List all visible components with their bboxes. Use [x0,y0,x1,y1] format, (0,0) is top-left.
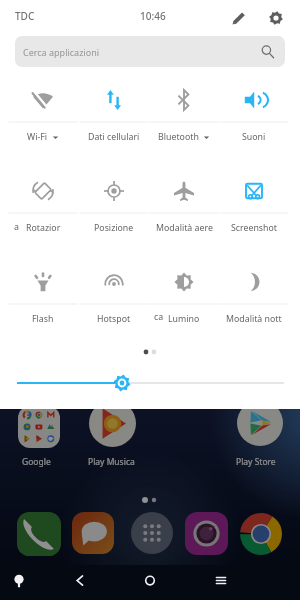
staticText: Dati cellulari [88,131,140,143]
staticText: Bluetooth [158,131,199,143]
button[interactable]: All apps [131,512,173,554]
button[interactable] [79,256,149,308]
button[interactable] [79,74,149,126]
staticText: TDC [15,9,35,23]
staticText: Rotazior [26,222,61,234]
button[interactable]: Hotspot [76,312,152,325]
button[interactable]: Flash [5,312,81,325]
button[interactable]: Search [260,44,276,60]
staticText: Modalità nott [226,313,282,325]
button[interactable]: Messages [72,512,114,554]
button[interactable]: Assistant [8,570,30,592]
staticText: Modalità aere [156,222,213,234]
button[interactable] [18,406,60,448]
staticText: Wi-Fi [27,131,48,143]
button[interactable] [8,74,78,126]
staticText: Lumino [168,313,200,325]
staticText: ca [154,311,164,323]
button[interactable]: Lumino [146,312,222,325]
staticText: Flash [32,313,54,325]
staticText: Cerca applicazioni [23,46,100,58]
staticText: Posizione [94,222,134,234]
button[interactable]: Back [68,570,90,592]
button[interactable]: Suoni [216,130,292,143]
button[interactable]: Camera [185,512,228,555]
staticText: 10:46 [140,9,166,23]
button[interactable]: Posizione [76,221,152,234]
button[interactable]: Screenshot [216,221,292,234]
button[interactable]: Edit [229,8,249,28]
button[interactable]: Recents [210,570,232,592]
staticText: a [14,221,19,233]
button[interactable]: Modalità aere [146,221,222,234]
button[interactable]: Modalità nott [216,312,292,325]
button[interactable] [219,165,289,217]
button[interactable]: Bluetooth [146,130,222,143]
button[interactable]: Wi-Fi [5,130,81,143]
button[interactable] [149,165,219,217]
button[interactable] [219,74,289,126]
button[interactable] [8,165,78,217]
button[interactable] [149,74,219,126]
button[interactable]: Brightness [0,371,300,395]
button[interactable]: Rotazior [5,221,81,234]
staticText: Hotspot [97,313,131,325]
button[interactable] [219,256,289,308]
button[interactable] [237,400,283,446]
staticText: Google [22,456,51,468]
staticText: Play Store [236,456,276,468]
button[interactable] [79,165,149,217]
button[interactable]: Home [139,570,161,592]
button[interactable]: Dati cellulari [76,130,152,143]
button[interactable] [89,400,136,447]
button[interactable]: Cerca applicazioni [15,36,285,67]
staticText: Screenshot [231,222,278,234]
button[interactable]: Phone [17,512,61,556]
button[interactable] [8,256,78,308]
staticText: Suoni [242,131,266,143]
button[interactable]: Settings [266,8,286,28]
button[interactable]: Chrome [240,513,282,555]
staticText: Play Musica [88,456,135,468]
button[interactable] [149,256,219,308]
